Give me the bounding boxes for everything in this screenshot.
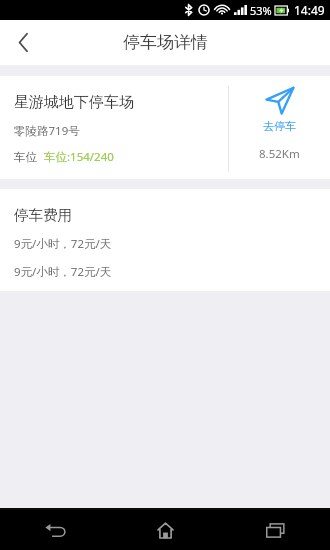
staticText: 停车场详情 [123, 32, 208, 53]
staticText: 53% [250, 3, 272, 18]
button[interactable]: Back [0, 510, 110, 550]
staticText: 星游城地下停车场 [14, 93, 134, 112]
button[interactable]: Recent apps [220, 510, 330, 550]
button[interactable]: 停车费用 [0, 189, 330, 291]
staticText: 车位:154/240 [44, 149, 114, 165]
button[interactable]: Home [110, 510, 220, 550]
staticText: 车位 [14, 150, 37, 164]
staticText: 8.52Km [259, 146, 300, 162]
button[interactable]: Back [0, 20, 46, 65]
staticText: 9元/小时，72元/天 [14, 264, 112, 280]
button[interactable]: 去停车 [263, 86, 296, 133]
staticText: 9元/小时，72元/天 [14, 236, 112, 252]
staticText: 去停车 [263, 119, 296, 133]
button[interactable]: 星游城地下停车场 [0, 76, 330, 179]
staticText: 14:49 [294, 2, 325, 18]
staticText: 零陵路719号 [14, 123, 80, 139]
staticText: 停车费用 [14, 206, 72, 224]
